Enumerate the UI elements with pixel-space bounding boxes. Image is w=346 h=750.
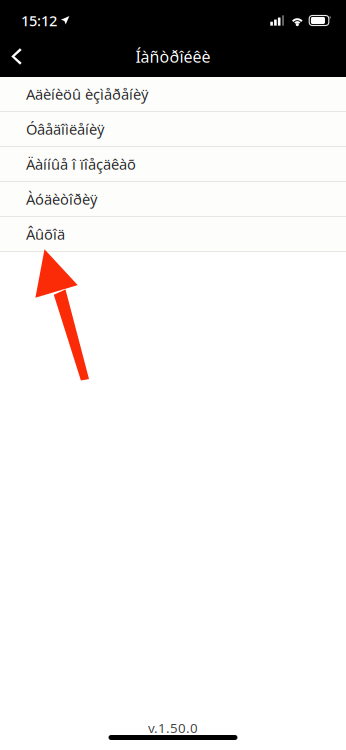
staticText: 15:12 [21,11,57,30]
button[interactable]: Àóäèòîðèÿ [0,182,346,217]
staticText: Âûõîä [26,224,65,244]
staticText: Íàñòðîéêè [135,46,210,67]
staticText: Óâåäîìëåíèÿ [26,119,104,139]
staticText: Àóäèòîðèÿ [26,189,97,209]
button[interactable]: Aäèíèöû èçìåðåíèÿ [0,77,346,112]
staticText: Äàííûå î ïîåçäêàõ [26,154,136,174]
button[interactable]: Back [0,36,33,77]
staticText: v.1.50.0 [148,719,198,737]
button[interactable]: Âûõîä [0,217,346,252]
button[interactable]: Óâåäîìëåíèÿ [0,112,346,147]
staticText: Aäèíèöû èçìåðåíèÿ [26,84,148,104]
button[interactable]: Äàííûå î ïîåçäêàõ [0,147,346,182]
